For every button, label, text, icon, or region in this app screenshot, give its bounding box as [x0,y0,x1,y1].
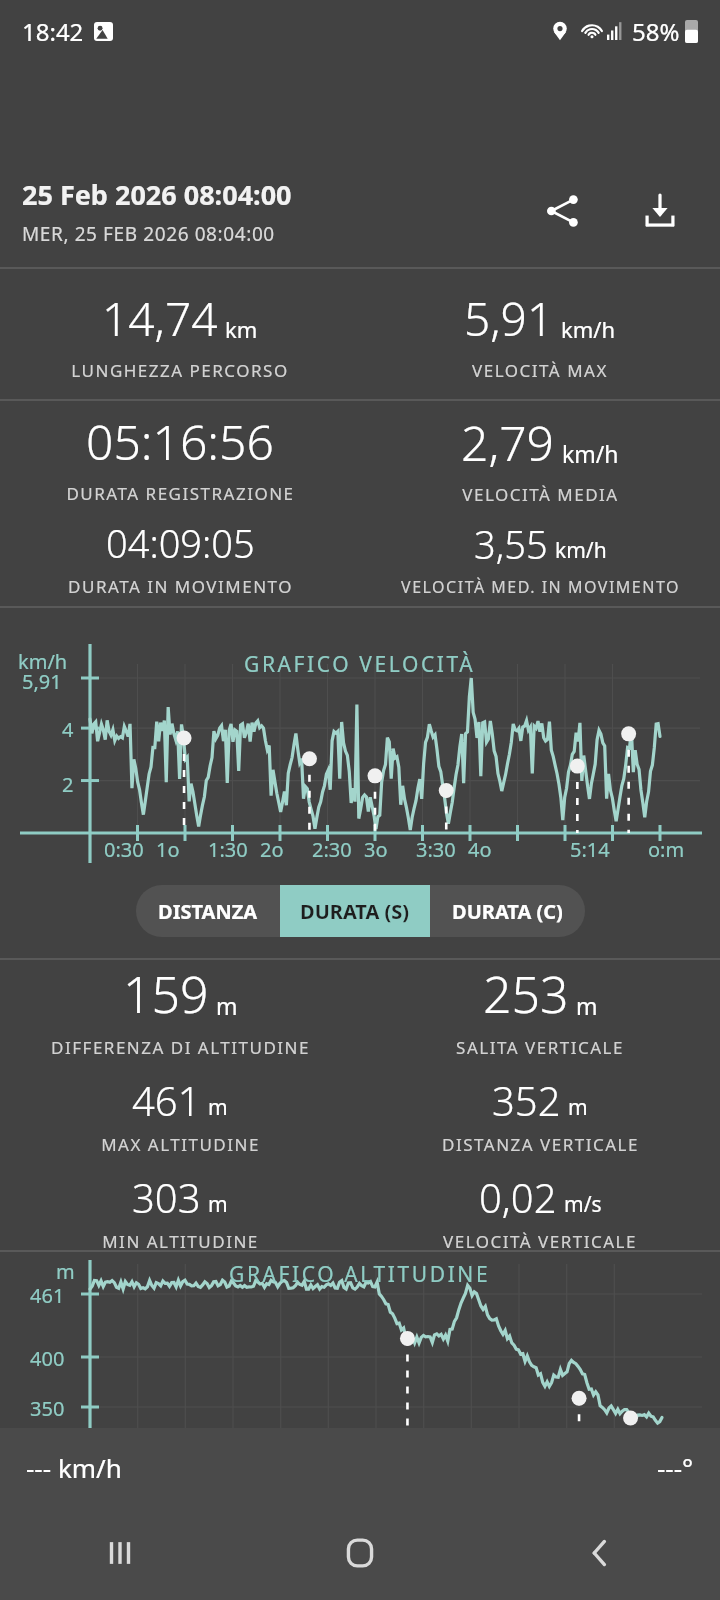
staticText: DISTANZA VERTICALE [442,1133,639,1156]
staticText: m [216,990,238,1021]
staticText: 25 Feb 2026 08:04:00 [22,176,292,213]
staticText: DISTANZA [158,898,258,925]
staticText: km/h [555,536,607,565]
staticText: MIN ALTITUDINE [102,1230,259,1250]
staticText: m [208,1190,228,1219]
button[interactable]: DURATA (S) [280,885,430,937]
button[interactable]: Download [624,175,696,247]
button[interactable]: DURATA (C) [430,885,585,937]
staticText: DIFFERENZA DI ALTITUDINE [51,1036,310,1059]
staticText: o:m [648,836,685,863]
staticText: 159 [123,960,209,1028]
staticText: 5:14 [570,836,610,863]
staticText: 2:30 [312,836,352,863]
staticText: VELOCITÀ MED. IN MOVIMENTO [401,576,680,598]
staticText: 2 [62,771,74,798]
staticText: 352 [492,1073,561,1127]
staticText: VELOCITÀ MEDIA [462,483,619,506]
staticText: DURATA (S) [300,898,410,925]
staticText: 2o [260,836,284,863]
staticText: m [56,1258,75,1285]
staticText: MAX ALTITUDINE [101,1133,260,1156]
button[interactable]: Share [526,175,598,247]
staticText: GRAFICO ALTITUDINE [229,1260,491,1289]
button[interactable]: Recent apps [0,1506,240,1600]
staticText: km/h [18,648,68,675]
staticText: --- km/h [26,1450,122,1485]
staticText: 3,55 [474,518,548,570]
staticText: 461 [30,1282,65,1309]
staticText: GRAFICO VELOCITÀ [244,650,476,679]
staticText: ---° [657,1450,694,1485]
staticText: 0:30 [104,836,144,863]
staticText: 253 [483,960,569,1028]
staticText: 461 [132,1073,201,1127]
staticText: km [225,314,258,344]
staticText: 14,74 [102,287,218,350]
staticText: VELOCITÀ MAX [472,359,608,382]
staticText: DURATA (C) [452,898,563,925]
staticText: 1o [156,836,180,863]
staticText: 1:30 [208,836,248,863]
staticText: 400 [30,1345,65,1372]
staticText: 58% [632,15,680,48]
staticText: LUNGHEZZA PERCORSO [71,359,289,382]
staticText: 2,79 [461,410,555,475]
staticText: 5,91 [464,287,554,350]
staticText: 303 [132,1170,201,1224]
staticText: 350 [30,1395,65,1422]
staticText: 4o [468,836,492,863]
staticText: km/h [562,438,619,469]
button[interactable]: Back [480,1506,720,1600]
staticText: km/h [561,314,616,344]
staticText: 4 [62,716,74,743]
button[interactable]: Home [240,1506,480,1600]
staticText: m [208,1093,228,1122]
staticText: m/s [564,1190,602,1219]
staticText: 3:30 [416,836,456,863]
staticText: m [568,1093,588,1122]
staticText: 18:42 [22,15,84,48]
staticText: 3o [364,836,388,863]
staticText: MER, 25 FEB 2026 08:04:00 [22,221,275,247]
staticText: 0,02 [479,1170,557,1224]
staticText: m [576,990,598,1021]
staticText: DURATA IN MOVIMENTO [68,575,293,598]
staticText: DURATA REGISTRAZIONE [66,482,295,505]
staticText: 04:09:05 [106,517,255,569]
staticText: VELOCITÀ VERTICALE [443,1230,637,1250]
staticText: 5,91 [22,668,62,695]
staticText: 05:16:56 [86,409,274,474]
staticText: SALITA VERTICALE [456,1036,624,1059]
button[interactable]: DISTANZA [136,885,280,937]
